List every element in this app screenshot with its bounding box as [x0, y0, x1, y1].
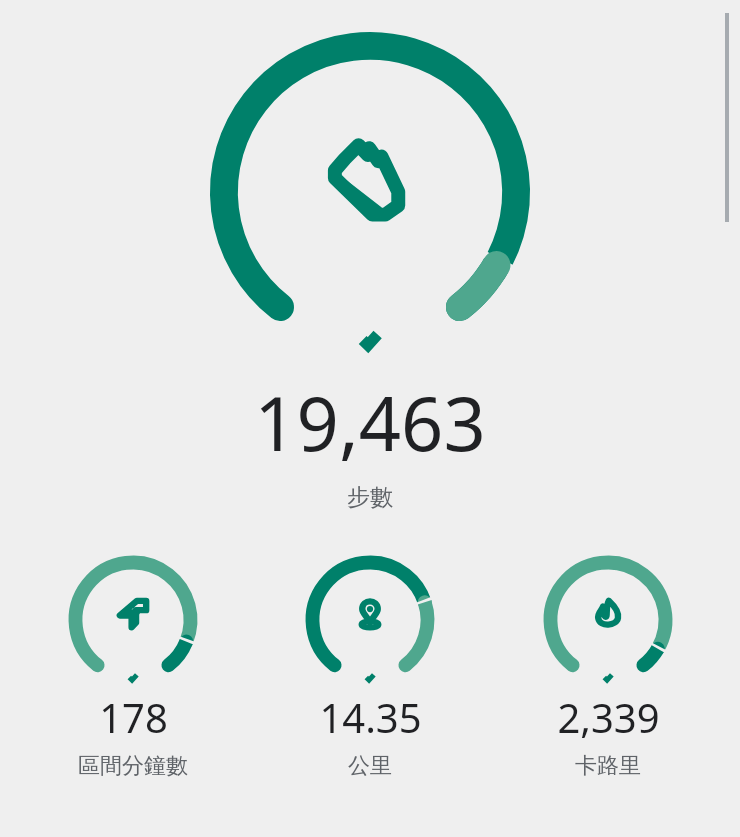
staticText: 卡路里	[575, 752, 641, 780]
button[interactable]: 步數目標環	[204, 26, 536, 358]
staticText: 19,463	[254, 372, 486, 473]
staticText: 2,339	[557, 690, 660, 744]
staticText: 14.35	[319, 690, 422, 744]
staticText: 178	[99, 690, 168, 744]
staticText: 步數	[347, 483, 393, 512]
staticText: 公里	[348, 752, 392, 780]
staticText: 區間分鐘數	[78, 752, 188, 780]
button[interactable]: 2,339	[503, 554, 713, 780]
button[interactable]: 14.35	[265, 554, 475, 780]
button[interactable]: 178	[28, 554, 238, 780]
